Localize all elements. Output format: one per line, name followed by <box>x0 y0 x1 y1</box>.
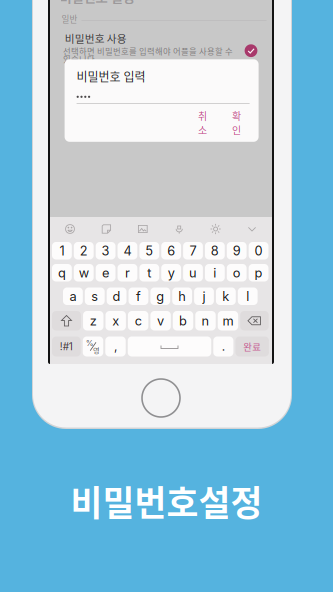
staticText: 7 <box>189 243 196 258</box>
button[interactable]: e <box>96 264 115 281</box>
staticText: f <box>136 288 141 304</box>
staticText: 3 <box>102 243 110 258</box>
button[interactable]: l <box>238 287 258 305</box>
staticText: 일반 <box>61 13 77 25</box>
button[interactable]: !#1 <box>52 336 81 356</box>
staticText: 8 <box>211 243 219 258</box>
button[interactable]: o <box>227 264 247 281</box>
staticText: 비밀번호설정 <box>70 476 262 526</box>
staticText: a <box>69 288 76 304</box>
button[interactable]: 완료 <box>235 336 269 356</box>
staticText: q <box>58 265 66 280</box>
button[interactable]: p <box>249 264 268 281</box>
staticText: s <box>91 288 98 304</box>
button[interactable]: w <box>74 264 94 281</box>
button[interactable]: q <box>52 264 72 281</box>
button[interactable]: z <box>83 311 103 330</box>
button[interactable]: Hide keyboard <box>241 218 263 240</box>
staticText: j <box>202 288 205 304</box>
staticText: 확인 <box>232 108 241 137</box>
staticText: l <box>246 288 249 304</box>
button[interactable]: Emoji <box>59 218 81 240</box>
button[interactable]: . <box>213 336 233 356</box>
button[interactable]: Keyboard settings <box>205 218 227 240</box>
button[interactable]: k <box>216 287 236 305</box>
button[interactable]: m <box>218 311 238 330</box>
button[interactable]: Voice input <box>168 218 190 240</box>
staticText: 1 <box>59 243 64 258</box>
button[interactable]: h <box>172 287 192 305</box>
button[interactable]: 7 <box>183 242 203 259</box>
staticText: r <box>125 265 130 280</box>
staticText: 비밀번호 설정 <box>59 0 134 6</box>
staticText: 취소 <box>198 108 207 137</box>
staticText: 영 <box>93 345 100 355</box>
button[interactable]: Shift <box>52 311 81 330</box>
button[interactable]: 취소 <box>195 117 210 128</box>
staticText: 비밀번호 입력 <box>77 68 146 85</box>
button[interactable]: g <box>150 287 170 305</box>
staticText: x <box>112 313 119 328</box>
button[interactable]: , <box>105 336 126 356</box>
staticText: z <box>90 313 97 328</box>
staticText: h <box>178 288 186 304</box>
staticText: 4 <box>123 243 131 258</box>
button[interactable]: Backspace <box>240 311 269 330</box>
staticText: 완료 <box>243 340 261 353</box>
staticText: 5 <box>145 243 153 258</box>
button[interactable]: Stickers <box>95 218 117 240</box>
button[interactable]: u <box>183 264 203 281</box>
staticText: w <box>79 265 89 280</box>
button[interactable]: t <box>139 264 159 281</box>
staticText: y <box>168 265 175 280</box>
button[interactable]: s <box>85 287 105 305</box>
button[interactable]: j <box>194 287 214 305</box>
button[interactable]: 8 <box>205 242 225 259</box>
staticText: % <box>86 338 94 348</box>
staticText: 비밀번호 사용 <box>65 30 127 46</box>
staticText: . <box>222 339 225 354</box>
button[interactable]: 2 <box>74 242 94 259</box>
button[interactable]: 9 <box>227 242 247 259</box>
staticText: g <box>156 288 164 304</box>
button[interactable]: r <box>118 264 137 281</box>
staticText: 있습니다. <box>63 53 97 65</box>
button[interactable]: d <box>107 287 126 305</box>
button[interactable]: y <box>161 264 181 281</box>
staticText: b <box>179 313 187 328</box>
button[interactable]: 5 <box>139 242 159 259</box>
button[interactable]: 3 <box>96 242 115 259</box>
button[interactable]: x <box>105 311 126 330</box>
button[interactable]: 1 <box>52 242 72 259</box>
staticText: p <box>254 265 262 280</box>
staticText: k <box>222 288 229 304</box>
button[interactable]: GIF <box>132 218 154 240</box>
staticText: 선택하면 비밀번호를 입력해야 어플을 사용할 수 <box>63 45 233 57</box>
staticText: 6 <box>167 243 175 258</box>
button[interactable]: 확인 <box>229 117 244 128</box>
button[interactable]: 0 <box>249 242 268 259</box>
button[interactable]: a <box>63 287 83 305</box>
staticText: t <box>147 265 151 280</box>
button[interactable]: 4 <box>118 242 137 259</box>
staticText: !#1 <box>60 340 73 353</box>
button[interactable]: 6 <box>161 242 181 259</box>
staticText: , <box>114 339 117 354</box>
button[interactable]: c <box>128 311 148 330</box>
button[interactable]: % <box>83 336 103 356</box>
staticText: v <box>157 313 164 328</box>
button[interactable]: v <box>150 311 171 330</box>
staticText: 2 <box>80 243 88 258</box>
staticText: u <box>189 265 197 280</box>
staticText: d <box>113 288 121 304</box>
button[interactable]: i <box>205 264 225 281</box>
button[interactable]: n <box>195 311 216 330</box>
staticText: o <box>233 265 241 280</box>
staticText: e <box>102 265 109 280</box>
button[interactable]: b <box>173 311 193 330</box>
button[interactable]: f <box>129 287 148 305</box>
button[interactable]: Space <box>128 336 211 356</box>
staticText: 0 <box>254 243 262 258</box>
staticText: n <box>201 313 209 328</box>
staticText: m <box>222 313 233 328</box>
